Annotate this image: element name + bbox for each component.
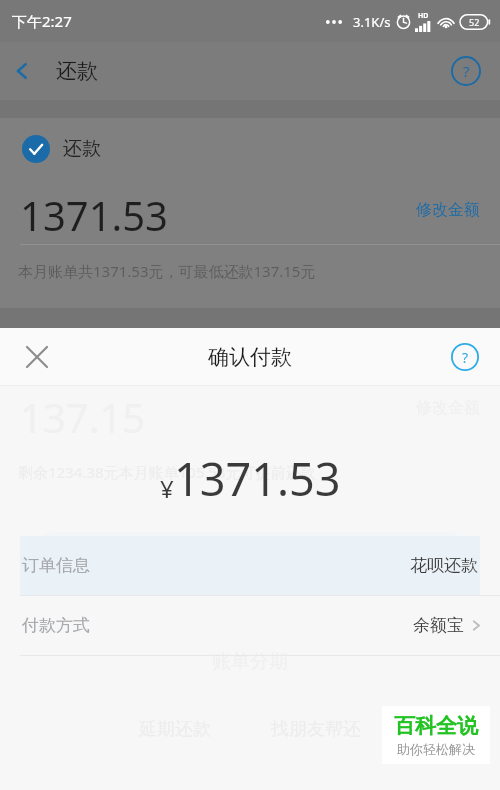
staticText: ¥ — [160, 472, 174, 505]
staticText: 订单信息 — [22, 555, 90, 576]
button[interactable]: Back — [0, 49, 44, 93]
staticText: 找朋友帮还 — [271, 718, 361, 741]
staticText: 剩余1234.38元本月账单105.53元可提前还款 — [18, 462, 316, 482]
button[interactable]: Help — [448, 340, 482, 374]
button[interactable]: Help — [449, 54, 483, 88]
staticText: ? — [463, 61, 470, 81]
staticText: 3.1K/s — [353, 13, 391, 31]
staticText: HD — [418, 11, 429, 21]
staticText: 百科全说 — [394, 713, 478, 739]
staticText: 确认付款 — [208, 344, 292, 370]
button[interactable]: 付款方式 — [0, 596, 500, 655]
staticText: 还款 — [56, 58, 98, 84]
button[interactable]: Close — [15, 335, 59, 379]
button[interactable]: 修改金额 — [410, 196, 486, 224]
button[interactable]: 订单信息 — [0, 536, 500, 595]
staticText: 账单分期 — [212, 650, 288, 674]
staticText: 本月账单共1371.53元，可最低还款137.15元 — [18, 261, 316, 281]
staticText: ? — [462, 348, 469, 367]
staticText: 52 — [469, 16, 480, 28]
staticText: 1371.53 — [20, 188, 168, 242]
staticText: 下午2:27 — [12, 11, 72, 31]
staticText: 修改金额 — [416, 200, 480, 220]
staticText: 助你轻松解决 — [397, 741, 475, 757]
staticText: 付款方式 — [22, 615, 90, 636]
staticText: 还款 — [63, 137, 101, 161]
staticText: 延期还款 — [139, 718, 211, 741]
staticText: 余额宝 — [413, 615, 464, 636]
staticText: 1371.53 — [174, 448, 341, 509]
staticText: 花呗还款 — [410, 555, 478, 576]
